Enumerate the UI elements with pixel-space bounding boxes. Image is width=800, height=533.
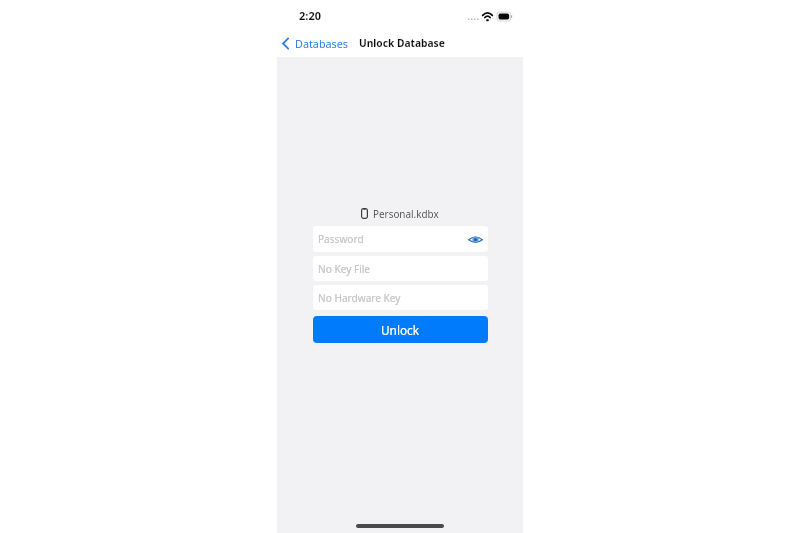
staticText: Unlock	[381, 322, 420, 338]
staticText: No Hardware Key	[318, 291, 401, 305]
staticText: No Key File	[318, 262, 371, 276]
button[interactable]: Databases	[281, 36, 349, 51]
staticText: Password	[318, 232, 364, 246]
button[interactable]: No Hardware Key	[313, 285, 488, 310]
button[interactable]: Password	[313, 226, 488, 252]
button[interactable]: Show password	[466, 229, 484, 249]
staticText: Databases	[295, 36, 349, 51]
staticText: Personal.kdbx	[373, 207, 439, 220]
button[interactable]: No Key File	[313, 256, 488, 281]
staticText: Unlock Database	[359, 36, 445, 50]
button[interactable]: Unlock	[313, 316, 488, 343]
staticText: 2:20	[299, 8, 321, 23]
